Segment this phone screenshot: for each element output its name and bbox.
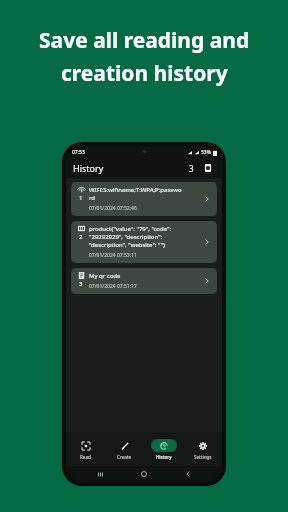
staticText: 07/01/2024 07:53:11 — [89, 252, 137, 259]
staticText: Save all reading and — [39, 26, 250, 55]
staticText: Read — [80, 454, 91, 460]
staticText: Settings — [194, 454, 212, 460]
staticText: History — [73, 162, 104, 174]
staticText: rd — [89, 194, 96, 202]
button[interactable]: Delete all history — [201, 161, 215, 175]
button[interactable]: Settings — [183, 436, 222, 463]
staticText: 1 — [79, 194, 83, 202]
staticText: Create — [117, 454, 132, 460]
staticText: 3 — [189, 163, 194, 174]
button[interactable]: 1 — [71, 182, 217, 216]
staticText: 3 — [79, 280, 83, 288]
button[interactable]: Back — [178, 467, 198, 481]
staticText: product{"value": "79", "code": — [89, 225, 172, 233]
button[interactable]: 3 — [71, 268, 217, 294]
button[interactable]: 2 — [71, 221, 217, 263]
staticText: creation history — [61, 59, 228, 88]
staticText: 07:53 — [72, 149, 85, 156]
staticText: WIFI:S:wifiname;T:WPA;P:passwo — [89, 186, 182, 194]
button[interactable]: History — [144, 436, 183, 463]
button[interactable]: Recents — [90, 467, 110, 481]
staticText: 07/01/2024 07:52:46 — [89, 205, 137, 212]
button[interactable]: Home — [134, 467, 154, 481]
staticText: 2 — [79, 233, 83, 241]
staticText: My qr code — [89, 272, 121, 280]
staticText: 53% — [201, 149, 211, 156]
button[interactable]: Read — [66, 436, 105, 463]
button[interactable]: Create — [105, 436, 144, 463]
staticText: "29292929", "description": — [89, 233, 163, 241]
staticText: "description", "website": ""} — [89, 241, 166, 249]
staticText: History — [156, 454, 172, 460]
staticText: 07/01/2024 07:51:17 — [89, 283, 137, 290]
